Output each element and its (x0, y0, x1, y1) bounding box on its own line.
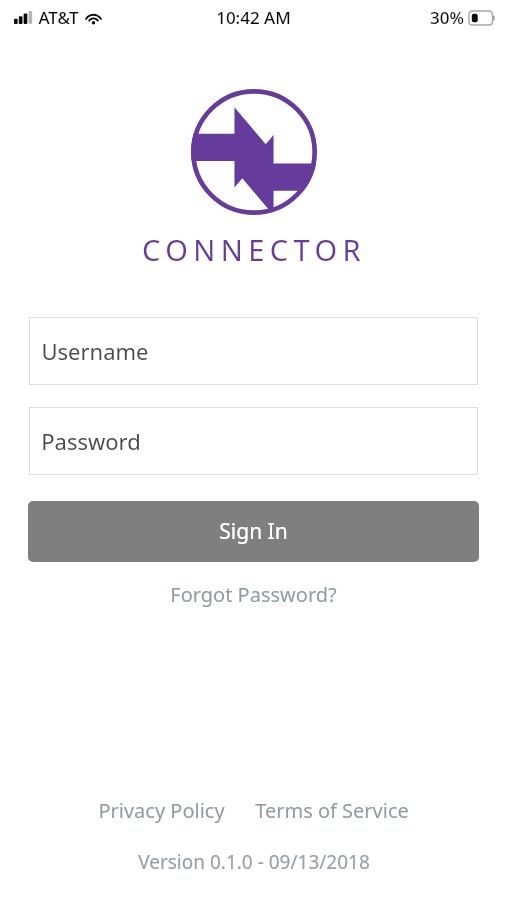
staticText: CONNECTOR (142, 230, 366, 269)
button[interactable]: Sign In (28, 501, 479, 562)
staticText: Forgot Password? (170, 581, 337, 608)
button[interactable]: Forgot Password? (156, 576, 351, 613)
button[interactable]: Password (29, 407, 478, 475)
staticText: Version 0.1.0 - 09/13/2018 (138, 849, 370, 875)
staticText: Privacy Policy (98, 797, 225, 824)
button[interactable]: Privacy Policy (93, 793, 230, 828)
staticText: 30% (430, 6, 464, 29)
button[interactable]: Terms of Service (250, 793, 414, 828)
staticText: Sign In (219, 517, 288, 546)
button[interactable]: Username (29, 317, 478, 385)
staticText: Terms of Service (255, 797, 409, 824)
staticText: AT&T (38, 6, 79, 29)
staticText: 10:42 AM (216, 6, 291, 29)
other: Connector logo (191, 89, 317, 215)
staticText: Password (41, 426, 141, 456)
staticText: Username (41, 336, 149, 366)
